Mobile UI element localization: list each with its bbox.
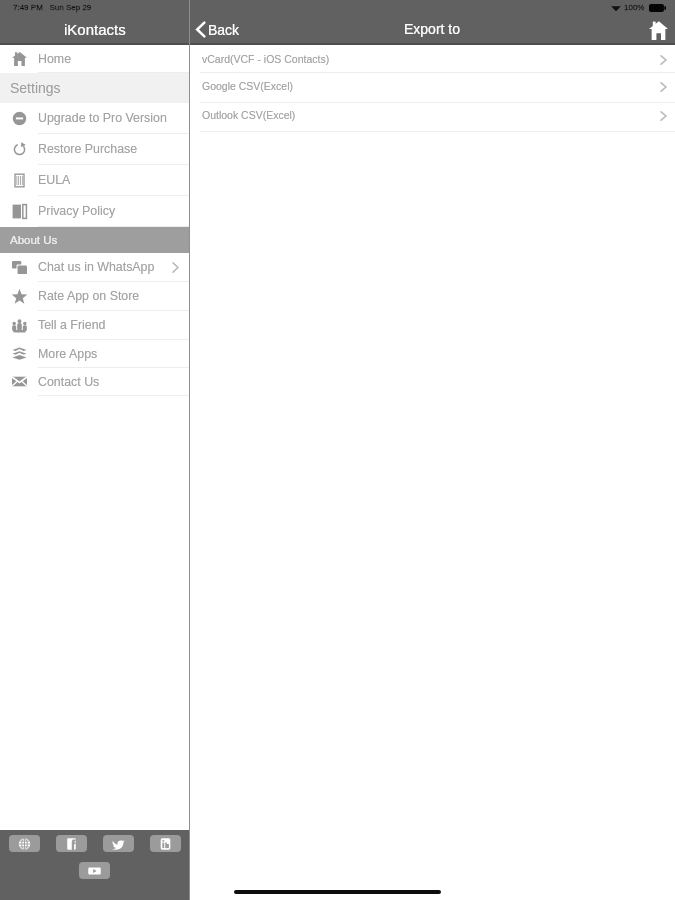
button[interactable]: Restore Purchase xyxy=(0,134,189,165)
button[interactable]: Upgrade to Pro Version xyxy=(0,103,189,134)
button[interactable]: Website xyxy=(9,835,40,852)
button[interactable]: More Apps xyxy=(0,340,189,368)
staticText: Tell a Friend xyxy=(38,318,106,332)
staticText: Chat us in WhatsApp xyxy=(38,260,155,274)
staticText: Privacy Policy xyxy=(38,204,116,218)
button[interactable]: Google CSV(Excel) xyxy=(190,73,675,103)
staticText: Back xyxy=(208,22,240,38)
staticText: Settings xyxy=(10,80,61,96)
staticText: 100% xyxy=(624,3,645,12)
button[interactable]: Rate App on Store xyxy=(0,282,189,311)
staticText: Contact Us xyxy=(38,375,100,389)
button[interactable]: Home xyxy=(0,45,189,73)
button[interactable]: Back xyxy=(195,21,240,38)
button[interactable]: LinkedIn xyxy=(150,835,181,852)
button[interactable]: Twitter xyxy=(103,835,134,852)
button[interactable]: vCard(VCF - iOS Contacts) xyxy=(190,45,675,73)
staticText: Upgrade to Pro Version xyxy=(38,111,167,125)
button[interactable]: EULA xyxy=(0,165,189,196)
button[interactable]: Home xyxy=(649,20,668,40)
staticText: Home xyxy=(38,52,72,66)
button[interactable]: Chat us in WhatsApp xyxy=(0,253,189,282)
button[interactable]: Contact Us xyxy=(0,368,189,396)
button[interactable]: Outlook CSV(Excel) xyxy=(190,103,675,132)
staticText: Outlook CSV(Excel) xyxy=(202,109,296,121)
staticText: More Apps xyxy=(38,347,98,361)
staticText: Restore Purchase xyxy=(38,142,138,156)
button[interactable]: YouTube xyxy=(79,862,110,879)
staticText: About Us xyxy=(10,234,58,247)
button[interactable]: Facebook xyxy=(56,835,87,852)
staticText: iKontacts xyxy=(64,21,126,38)
staticText: Google CSV(Excel) xyxy=(202,80,294,92)
staticText: Export to xyxy=(404,21,461,37)
staticText: 7:49 PM Sun Sep 29 xyxy=(13,3,92,12)
button[interactable]: Tell a Friend xyxy=(0,311,189,340)
staticText: vCard(VCF - iOS Contacts) xyxy=(202,53,330,65)
button[interactable]: Privacy Policy xyxy=(0,196,189,227)
staticText: Rate App on Store xyxy=(38,289,140,303)
staticText: EULA xyxy=(38,173,71,187)
